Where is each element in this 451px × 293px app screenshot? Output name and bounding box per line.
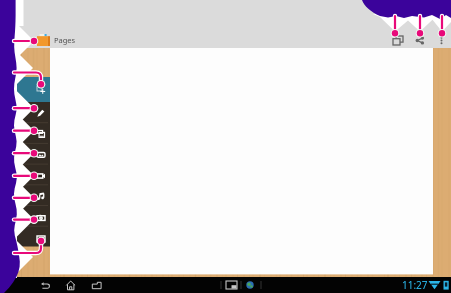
button[interactable]: Video <box>16 165 50 186</box>
button[interactable]: Share <box>411 31 429 49</box>
button[interactable]: Home <box>59 277 83 293</box>
button[interactable]: Pages <box>37 33 76 47</box>
button[interactable]: Camera <box>16 207 50 228</box>
button[interactable]: Recent apps <box>85 277 109 293</box>
button[interactable]: Back <box>34 277 58 293</box>
button[interactable]: Image <box>16 144 50 165</box>
button[interactable]: Pen <box>16 102 50 123</box>
button[interactable]: Duplicate <box>389 31 407 49</box>
staticText: 11:27 <box>402 278 428 292</box>
staticText: Pages <box>54 35 76 45</box>
button[interactable]: Text note <box>16 123 50 144</box>
button[interactable]: More options <box>432 31 450 49</box>
button[interactable]: Shape <box>16 228 50 249</box>
button[interactable]: Select <box>16 77 50 102</box>
button[interactable]: Audio <box>16 186 50 207</box>
